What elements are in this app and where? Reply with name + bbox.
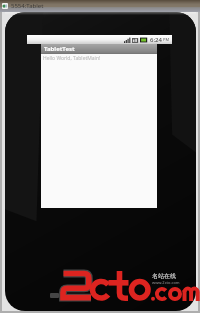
staticText: 5554:Tablet	[11, 2, 44, 10]
staticText: 6:24	[150, 36, 162, 44]
staticText: TabletTest	[44, 45, 75, 53]
staticText: PM	[163, 37, 170, 42]
staticText: Hello World, TabletMain!	[43, 55, 101, 62]
staticText: 名站在线	[152, 272, 176, 280]
staticText: www.2cto.com	[152, 280, 180, 285]
